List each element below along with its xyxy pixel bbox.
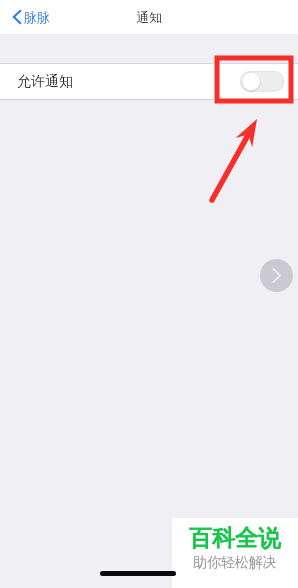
button[interactable]: 允许通知	[0, 64, 298, 99]
button[interactable]: 展开	[260, 259, 293, 292]
button[interactable]: 允许通知 开关	[240, 71, 284, 92]
staticText: 允许通知	[17, 73, 73, 91]
staticText: 助你轻松解决	[193, 554, 277, 572]
button[interactable]: 脉脉	[11, 6, 52, 28]
staticText: 通知	[136, 9, 162, 25]
staticText: 百科全说	[189, 524, 281, 553]
staticText: 脉脉	[24, 9, 50, 25]
